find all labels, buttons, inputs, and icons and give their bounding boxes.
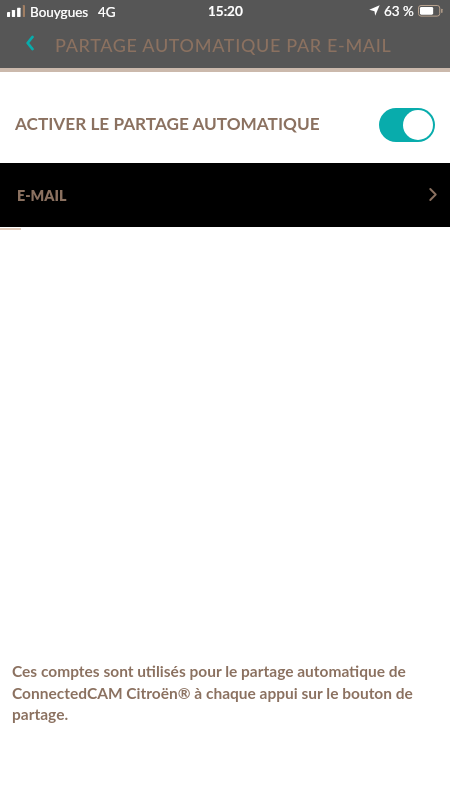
staticText: E-MAIL bbox=[17, 187, 67, 204]
staticText: PARTAGE AUTOMATIQUE PAR E-MAIL bbox=[55, 34, 392, 56]
staticText: 4G bbox=[98, 4, 116, 20]
staticText: ACTIVER LE PARTAGE AUTOMATIQUE bbox=[15, 113, 320, 134]
button[interactable]: ACTIVER LE PARTAGE AUTOMATIQUE bbox=[0, 72, 450, 163]
button[interactable]: Back bbox=[11, 25, 48, 61]
staticText: Ces comptes sont utilisés pour le partag… bbox=[12, 662, 424, 723]
staticText: Bouygues bbox=[30, 4, 89, 20]
button[interactable]: E-MAIL bbox=[0, 163, 450, 227]
staticText: 63 % bbox=[384, 3, 414, 19]
staticText: 15:20 bbox=[208, 3, 243, 19]
